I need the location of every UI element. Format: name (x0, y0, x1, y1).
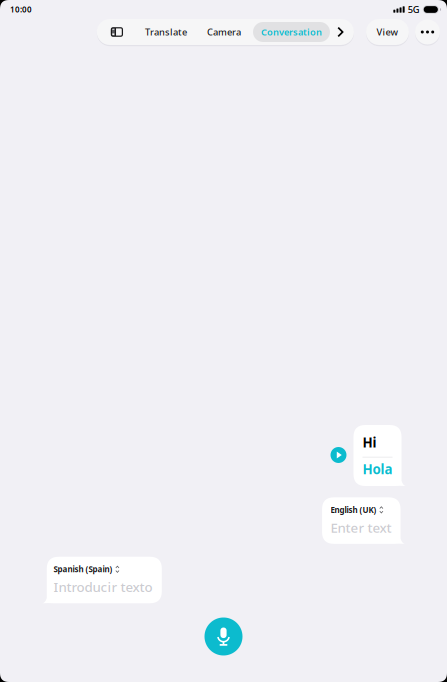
staticText: 5G (408, 3, 420, 16)
button[interactable]: More tabs (332, 19, 354, 45)
staticText: Translate (145, 26, 187, 38)
staticText: Hi (362, 433, 376, 451)
staticText: Enter text (331, 519, 392, 536)
staticText: Camera (207, 26, 241, 38)
button[interactable]: Start conversation (204, 617, 242, 655)
staticText: English (UK) (331, 505, 377, 515)
staticText: Spanish (Spain) (54, 564, 113, 575)
staticText: View (376, 26, 398, 38)
button[interactable]: More (415, 19, 440, 44)
staticText: Hola (362, 460, 392, 478)
staticText: 10:00 (10, 4, 32, 15)
staticText: Conversation (261, 26, 322, 38)
button[interactable]: Sidebar (97, 19, 135, 45)
button[interactable]: View (366, 19, 409, 45)
staticText: Introducir texto (54, 578, 153, 596)
button[interactable]: Camera (197, 19, 251, 45)
button[interactable]: Translate (135, 19, 197, 45)
button[interactable]: Conversation (251, 19, 332, 45)
